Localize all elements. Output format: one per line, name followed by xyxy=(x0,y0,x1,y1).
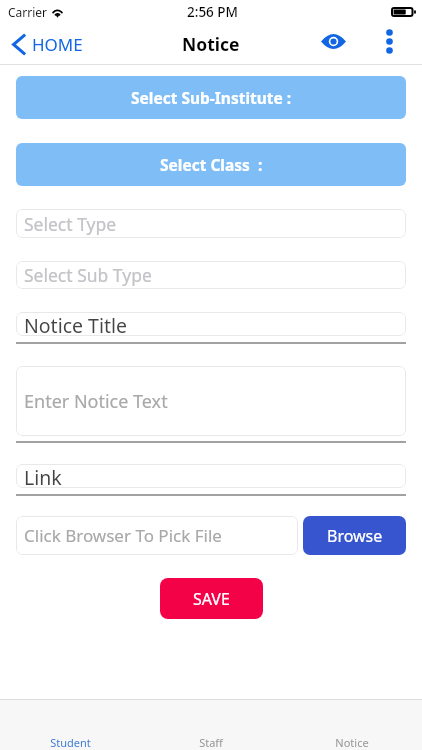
button[interactable]: Preview xyxy=(313,26,354,57)
button[interactable]: SAVE xyxy=(160,578,263,619)
staticText: 2:56 PM xyxy=(187,3,238,21)
staticText: Notice xyxy=(335,735,369,750)
staticText: SAVE xyxy=(193,588,230,610)
staticText: Select Class : xyxy=(160,154,263,175)
button[interactable]: Select Class : xyxy=(16,143,406,186)
staticText: Student xyxy=(50,735,91,750)
staticText: HOME xyxy=(32,33,83,56)
button[interactable]: Notice xyxy=(281,700,422,750)
staticText: Enter Notice Text xyxy=(24,389,168,414)
button[interactable]: Staff xyxy=(140,700,281,750)
staticText: Select Sub Type xyxy=(24,263,152,287)
staticText: Link xyxy=(24,464,62,488)
button[interactable]: HOME xyxy=(0,29,91,60)
button[interactable]: Enter Notice Text xyxy=(16,366,406,436)
button[interactable]: Select Sub-Institute : xyxy=(16,76,406,119)
button[interactable]: More options xyxy=(377,23,402,60)
button[interactable]: Notice Title xyxy=(16,312,406,336)
staticText: Select Type xyxy=(24,212,117,236)
button[interactable]: Select Sub Type xyxy=(16,261,406,289)
staticText: Select Sub-Institute : xyxy=(131,87,292,108)
staticText: Staff xyxy=(199,735,223,750)
staticText: Browse xyxy=(327,525,383,547)
button[interactable]: Link xyxy=(16,464,406,488)
button[interactable]: Browse xyxy=(303,516,406,555)
button[interactable]: Click Browser To Pick File xyxy=(16,516,298,555)
staticText: Click Browser To Pick File xyxy=(24,524,222,547)
staticText: Notice Title xyxy=(24,312,128,336)
staticText: Notice xyxy=(182,32,240,56)
button[interactable]: Select Type xyxy=(16,209,406,238)
staticText: Carrier xyxy=(8,4,48,20)
button[interactable]: Student xyxy=(0,700,140,750)
